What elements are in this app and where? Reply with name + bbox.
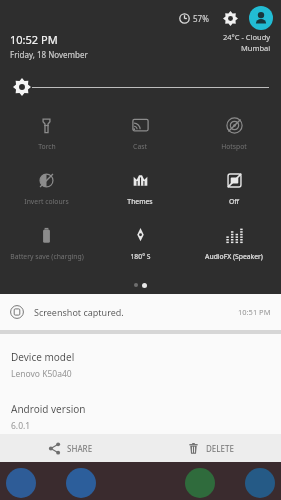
button[interactable]: Cast: [93, 114, 187, 153]
button[interactable]: AudioFX (Speaker): [187, 224, 281, 263]
staticText: Torch: [38, 142, 56, 151]
button[interactable]: Settings: [219, 7, 241, 29]
staticText: Hotspot: [221, 142, 247, 151]
staticText: Lenovo K50a40: [11, 368, 72, 380]
staticText: Screenshot captured.: [34, 306, 238, 318]
staticText: DELETE: [206, 443, 234, 454]
staticText: 57%: [193, 13, 209, 24]
button[interactable]: Screenshot captured.: [0, 294, 281, 330]
button[interactable]: App: [66, 468, 96, 498]
staticText: Invert colours: [24, 197, 69, 206]
button[interactable]: Brightness: [12, 77, 32, 97]
staticText: Friday, 18 November: [10, 49, 88, 60]
staticText: Battery save (charging): [10, 252, 84, 261]
button[interactable]: User profile: [249, 6, 273, 30]
staticText: Off: [229, 197, 239, 206]
staticText: 180° S: [130, 252, 151, 261]
staticText: 10:51 PM: [238, 307, 271, 317]
button[interactable]: DELETE: [140, 434, 281, 462]
staticText: SHARE: [67, 443, 93, 454]
button[interactable]: Torch: [0, 114, 93, 153]
button[interactable]: App: [6, 468, 36, 498]
button[interactable]: Hotspot: [187, 114, 281, 153]
staticText: Device model: [11, 350, 75, 364]
button[interactable]: Invert colours: [0, 169, 93, 208]
staticText: Cast: [133, 142, 147, 151]
button[interactable]: 180° S: [93, 224, 187, 263]
button[interactable]: App: [245, 468, 275, 498]
button[interactable]: Themes: [93, 169, 187, 208]
staticText: AudioFX (Speaker): [205, 252, 263, 261]
button[interactable]: App: [185, 468, 215, 498]
staticText: 6.0.1: [11, 420, 31, 432]
staticText: 10:52 PM: [10, 32, 58, 47]
button[interactable]: SHARE: [0, 434, 140, 462]
button[interactable]: Battery save (charging): [0, 224, 93, 263]
staticText: Android version: [11, 402, 86, 416]
staticText: Themes: [127, 197, 153, 206]
staticText: Mumbai: [241, 43, 271, 53]
staticText: 24°C - Cloudy: [223, 32, 271, 42]
button[interactable]: Off: [187, 169, 281, 208]
